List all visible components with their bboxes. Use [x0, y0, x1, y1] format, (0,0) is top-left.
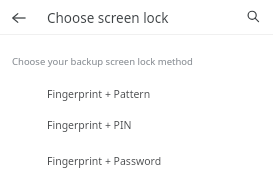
staticText: Choose your backup screen lock method	[12, 55, 193, 68]
staticText: Fingerprint + Pattern	[47, 87, 151, 101]
button[interactable]: Search	[239, 3, 267, 31]
button[interactable]: Fingerprint + Password	[0, 146, 273, 176]
staticText: Fingerprint + PIN	[47, 118, 132, 132]
staticText: Fingerprint + Password	[47, 154, 162, 168]
button[interactable]: Fingerprint + PIN	[0, 110, 273, 140]
button[interactable]: Fingerprint + Pattern	[0, 79, 273, 109]
staticText: Choose screen lock	[47, 9, 169, 27]
button[interactable]: Back	[5, 4, 33, 32]
